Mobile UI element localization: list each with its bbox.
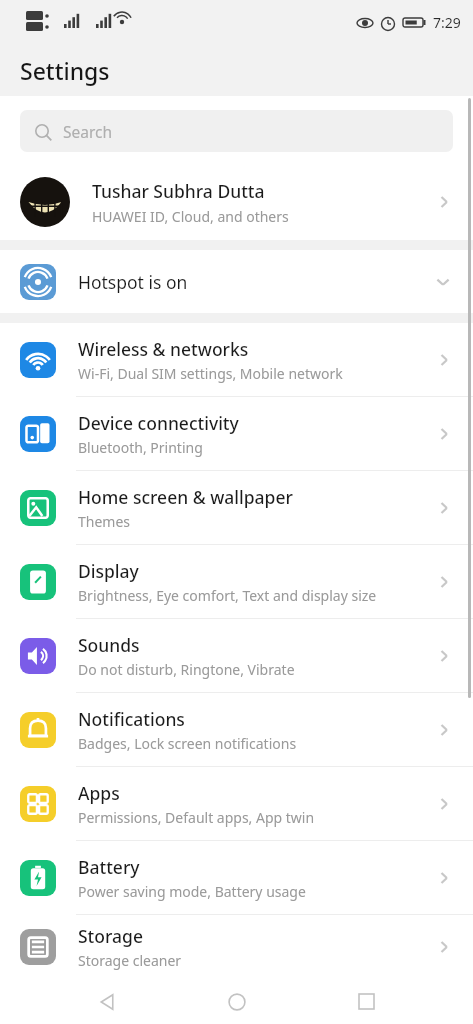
staticText: Storage cleaner (78, 951, 182, 970)
staticText: Search (63, 121, 113, 142)
staticText: Bluetooth, Printing (78, 438, 203, 457)
staticText: Home screen & wallpaper (78, 485, 293, 509)
button[interactable]: Home screen & wallpaper (0, 471, 473, 544)
button[interactable]: Notifications (0, 693, 473, 766)
staticText: Themes (78, 512, 131, 531)
staticText: Device connectivity (78, 411, 239, 435)
staticText: Battery (78, 855, 140, 879)
button[interactable]: Battery (0, 841, 473, 914)
staticText: Settings (20, 55, 110, 86)
button[interactable]: Device connectivity (0, 397, 473, 470)
staticText: Brightness, Eye comfort, Text and displa… (78, 586, 377, 605)
staticText: Storage (78, 924, 143, 948)
button[interactable]: Back (84, 979, 130, 1024)
staticText: Permissions, Default apps, App twin (78, 808, 315, 827)
button[interactable]: Recents (343, 979, 389, 1024)
button[interactable]: Sounds (0, 619, 473, 692)
staticText: Tushar Subhra Dutta (92, 179, 265, 203)
staticText: HUAWEI ID, Cloud, and others (92, 207, 289, 226)
staticText: Display (78, 559, 139, 583)
staticText: Hotspot is on (78, 270, 433, 294)
staticText: Sounds (78, 633, 140, 657)
button[interactable]: Tushar Subhra Dutta (0, 164, 473, 240)
button[interactable]: Search (20, 110, 453, 152)
button[interactable]: Wireless & networks (0, 323, 473, 396)
button[interactable]: Storage (0, 915, 473, 979)
staticText: Badges, Lock screen notifications (78, 734, 297, 753)
button[interactable]: Display (0, 545, 473, 618)
button[interactable]: Apps (0, 767, 473, 840)
staticText: Power saving mode, Battery usage (78, 882, 306, 901)
button[interactable]: Home (214, 979, 260, 1024)
staticText: Apps (78, 781, 120, 805)
staticText: Do not disturb, Ringtone, Vibrate (78, 660, 295, 679)
staticText: 7:29 (433, 13, 461, 32)
staticText: Wireless & networks (78, 337, 249, 361)
staticText: Notifications (78, 707, 185, 731)
other: Expand (433, 272, 453, 292)
staticText: Wi-Fi, Dual SIM settings, Mobile network (78, 364, 343, 383)
button[interactable]: Hotspot is on (0, 250, 473, 313)
